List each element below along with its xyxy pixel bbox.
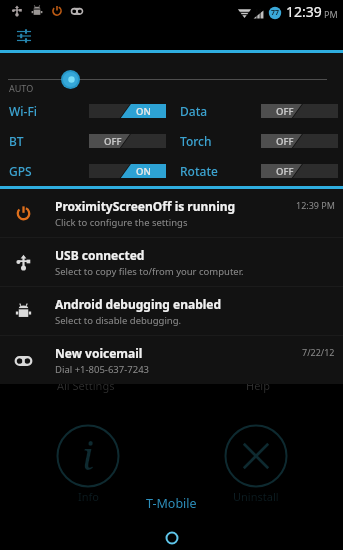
button[interactable]: Android debugging enabled — [0, 287, 343, 335]
staticText: PM — [324, 8, 338, 20]
button[interactable]: All Settings — [0, 378, 172, 393]
staticText: T-Mobile — [146, 495, 197, 512]
staticText: Torch — [180, 133, 212, 149]
button[interactable]: OFF — [261, 104, 338, 118]
staticText: Info — [78, 489, 99, 504]
button[interactable]: OFF — [261, 134, 338, 148]
staticText: 12:39 — [286, 2, 322, 21]
staticText: Select to copy files to/from your comput… — [55, 265, 244, 278]
button[interactable]: ON — [89, 164, 166, 178]
staticText: Dial +1-805-637-7243 — [55, 363, 150, 376]
staticText: Data — [180, 103, 208, 119]
staticText: Uninstall — [233, 489, 279, 504]
staticText: Wi-Fi — [9, 103, 37, 119]
button[interactable]: GPS — [0, 156, 171, 186]
staticText: USB connected — [55, 247, 145, 263]
button[interactable]: Help — [172, 378, 343, 393]
staticText: ProximityScreenOff is running — [55, 198, 236, 214]
staticText: OFF — [104, 135, 122, 148]
staticText: OFF — [276, 105, 294, 118]
button[interactable]: USB connected — [0, 238, 343, 286]
button[interactable]: i — [55, 423, 121, 504]
staticText: BT — [9, 133, 24, 149]
button[interactable]: OFF — [89, 134, 166, 148]
button[interactable]: Uninstall — [223, 423, 289, 504]
button[interactable]: OFF — [261, 164, 338, 178]
button[interactable]: Brightness — [61, 70, 80, 89]
button[interactable]: BT — [0, 126, 171, 156]
staticText: OFF — [276, 135, 294, 148]
button[interactable]: Quick settings — [16, 28, 32, 44]
staticText: Rotate — [180, 163, 218, 179]
staticText: Android debugging enabled — [55, 296, 222, 312]
staticText: New voicemail — [55, 345, 143, 361]
staticText: Click to configure the settings — [55, 216, 188, 229]
button[interactable]: ON — [89, 104, 166, 118]
button[interactable]: Wi-Fi — [0, 96, 171, 126]
staticText: Select to disable debugging. — [55, 314, 182, 327]
staticText: ON — [136, 165, 151, 178]
staticText: OFF — [276, 165, 294, 178]
staticText: All Settings — [57, 378, 115, 393]
staticText: 7/22/12 — [302, 346, 335, 358]
button[interactable]: Data — [171, 96, 343, 126]
staticText: Help — [246, 378, 270, 393]
button[interactable]: ProximityScreenOff is running — [0, 189, 343, 237]
staticText: GPS — [9, 163, 32, 179]
button[interactable]: New voicemail — [0, 336, 343, 384]
staticText: i — [82, 429, 94, 481]
button[interactable]: Torch — [171, 126, 343, 156]
button[interactable]: Home — [162, 528, 182, 548]
button[interactable]: Rotate — [171, 156, 343, 186]
staticText: ON — [136, 105, 151, 118]
staticText: 77 — [271, 8, 280, 18]
staticText: AUTO — [9, 82, 34, 94]
staticText: 12:39 PM — [296, 199, 335, 211]
